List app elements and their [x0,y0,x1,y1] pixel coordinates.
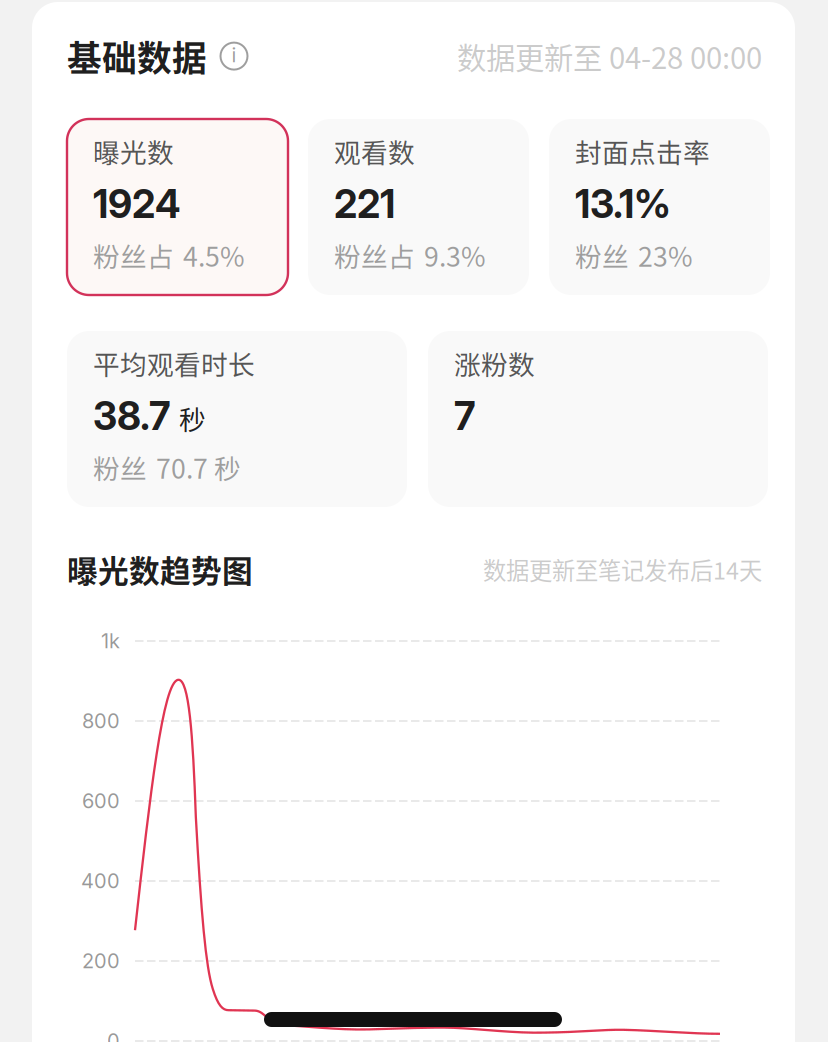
button[interactable]: 曝光数 [67,119,288,295]
button[interactable]: 涨粉数 [428,331,768,507]
staticText: 曝光数 [93,132,174,170]
staticText: 封面点击率 [575,132,710,170]
staticText: 0 [107,1029,120,1042]
staticText: 粉丝占 [93,236,174,274]
staticText: 1k [101,629,120,653]
staticText: 涨粉数 [454,344,535,382]
button[interactable]: 数据说明 [219,41,249,71]
staticText: 1924 [93,181,181,227]
staticText: 秒 [179,399,206,437]
staticText: 800 [82,709,120,733]
staticText: 7 [454,393,475,439]
staticText: 曝光数趋势图 [67,547,253,591]
staticText: 基础数据 [67,31,207,81]
button[interactable]: 平均观看时长 [67,331,407,507]
staticText: 9.3% [424,236,486,274]
staticText: 4.5% [183,236,245,274]
staticText: 13.1% [575,181,671,227]
staticText: 观看数 [334,132,415,170]
staticText: i [231,43,236,67]
button[interactable]: 封面点击率 [549,119,770,295]
staticText: 600 [82,789,120,813]
staticText: 38.7 [93,393,170,439]
staticText: 粉丝占 [334,236,415,274]
staticText: 平均观看时长 [93,344,255,382]
staticText: 221 [334,181,395,227]
staticText: 400 [81,869,120,893]
staticText: 数据更新至 04-28 00:00 [457,35,762,77]
staticText: 200 [82,949,120,973]
staticText: 23% [638,236,693,274]
staticText: 数据更新至笔记发布后14天 [483,552,762,586]
staticText: 粉丝 [575,236,629,274]
button[interactable]: 观看数 [308,119,529,295]
staticText: 70.7 秒 [156,448,241,486]
staticText: 粉丝 [93,448,147,486]
